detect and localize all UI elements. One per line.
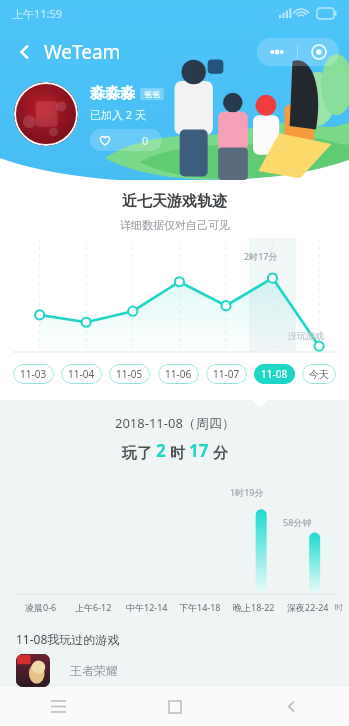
staticText: 时 [335, 602, 343, 612]
button[interactable]: Back [10, 37, 40, 67]
staticText: 没玩游戏 [288, 330, 324, 341]
staticText: 玩了 [122, 442, 156, 462]
staticText: 淼淼淼 [90, 84, 135, 103]
staticText: 17 [189, 439, 209, 462]
button[interactable]: Recent apps [0, 687, 117, 726]
staticText: 时 [166, 442, 189, 462]
staticText: 今天 [309, 368, 329, 381]
staticText: 0 [142, 133, 149, 148]
button[interactable]: Back [233, 687, 349, 726]
button[interactable]: 11-06 [158, 364, 199, 384]
button[interactable]: Close [298, 38, 339, 66]
staticText: 深夜22-24 [287, 601, 329, 613]
staticText: WeTeam [44, 39, 121, 65]
staticText: 爸爸 [144, 89, 160, 99]
staticText: 详细数据仅对自己可见 [120, 218, 230, 232]
staticText: 2018-11-08（周四） [115, 414, 235, 432]
staticText: 王者荣耀 [70, 663, 118, 678]
staticText: 近七天游戏轨迹 [122, 192, 227, 211]
staticText: 11-08我玩过的游戏 [16, 631, 120, 647]
button[interactable]: 今天 [302, 364, 336, 384]
staticText: 下午14-18 [179, 601, 221, 613]
staticText: 2时17分 [244, 250, 278, 262]
staticText: 58分钟 [283, 516, 312, 528]
staticText: 分 [209, 442, 228, 462]
staticText: 上午6-12 [75, 601, 112, 613]
button[interactable]: More options [257, 38, 297, 66]
staticText: 1时19分 [230, 486, 264, 498]
staticText: 上午11:59 [12, 6, 63, 21]
button[interactable]: 11-05 [109, 364, 150, 384]
staticText: 已加入 2 天 [90, 107, 147, 122]
staticText: 凌晨0-6 [25, 601, 57, 613]
button[interactable]: 王者荣耀 [16, 654, 349, 687]
button[interactable]: 11-04 [61, 364, 102, 384]
staticText: 11-07 [213, 367, 240, 381]
staticText: 11-04 [68, 367, 95, 381]
staticText: 11-05 [116, 367, 143, 381]
button[interactable]: 11-03 [13, 364, 54, 384]
button[interactable]: 11-07 [206, 364, 247, 384]
button[interactable]: 0 [90, 129, 162, 151]
staticText: 2 [156, 439, 166, 462]
staticText: 11-06 [165, 367, 192, 381]
button[interactable]: 11-08 [254, 364, 295, 384]
staticText: 中午12-14 [126, 601, 168, 613]
button[interactable]: Home [117, 687, 233, 726]
staticText: 11-08 [261, 367, 288, 381]
staticText: 11-03 [20, 367, 47, 381]
staticText: 晚上18-22 [233, 601, 275, 613]
button[interactable]: Avatar [14, 82, 78, 146]
